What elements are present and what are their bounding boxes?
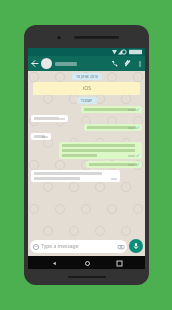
button[interactable]: Attach xyxy=(121,57,134,70)
button[interactable]: iOS xyxy=(33,82,140,95)
button[interactable] xyxy=(31,133,51,140)
button[interactable] xyxy=(31,115,68,122)
button[interactable]: Type a message xyxy=(30,240,127,253)
button[interactable]: Recent apps xyxy=(113,257,125,269)
button[interactable] xyxy=(59,142,142,159)
button[interactable] xyxy=(81,106,142,113)
button[interactable] xyxy=(86,161,142,168)
button[interactable]: Back xyxy=(48,257,60,269)
button[interactable]: TODAY xyxy=(77,97,97,104)
button[interactable] xyxy=(84,124,142,131)
button[interactable]: Record voice message xyxy=(129,239,143,253)
button[interactable] xyxy=(41,56,108,71)
button[interactable]: More options xyxy=(134,58,145,69)
staticText: TODAY xyxy=(81,98,93,103)
button[interactable]: Back xyxy=(28,57,41,70)
other: Camera xyxy=(118,244,124,250)
button[interactable]: Call xyxy=(108,57,121,70)
button[interactable]: Home xyxy=(81,257,93,269)
staticText: Type a message xyxy=(41,243,79,250)
staticText: 18 JUNE 2016 xyxy=(76,74,98,79)
staticText: iOS xyxy=(83,85,91,92)
button[interactable]: 18 JUNE 2016 xyxy=(72,73,102,80)
button[interactable] xyxy=(31,170,120,182)
